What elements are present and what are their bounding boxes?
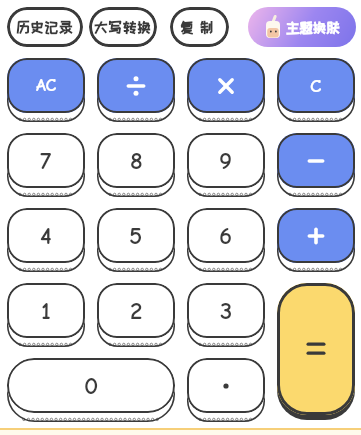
staticText: 6 [219,221,233,250]
button[interactable] [187,358,265,413]
button[interactable]: 历史记录 [7,7,83,47]
staticText: 大写转换 [94,20,152,35]
staticText: 7 [40,146,52,175]
button[interactable] [97,58,175,113]
button[interactable]: 主题换肤 [248,7,356,47]
button[interactable]: C [277,58,355,113]
button[interactable]: 5 [97,208,175,263]
button[interactable]: 9 [187,133,265,188]
staticText: 8 [130,146,143,175]
button[interactable] [187,58,265,113]
button[interactable]: 8 [97,133,175,188]
staticText: 1 [41,296,51,325]
button[interactable]: 1 [7,283,85,338]
button[interactable]: 3 [187,283,265,338]
button[interactable]: 大写转换 [89,7,157,47]
staticText: 复制 [180,20,220,35]
button[interactable] [277,133,355,188]
button[interactable]: 2 [97,283,175,338]
button[interactable]: 0 [7,358,175,413]
button[interactable]: 7 [7,133,85,188]
staticText: 2 [130,296,143,325]
staticText: 历史记录 [16,20,74,35]
staticText: 主题换肤 [286,20,340,35]
button[interactable]: 4 [7,208,85,263]
staticText: 4 [40,221,52,250]
button[interactable]: AC [7,58,85,113]
staticText: 3 [220,296,233,325]
button[interactable]: 6 [187,208,265,263]
staticText: 9 [219,146,233,175]
button[interactable] [277,208,355,263]
button[interactable] [277,283,355,415]
staticText: 5 [129,221,143,250]
staticText: C [310,75,322,97]
button[interactable]: 复制 [170,7,229,47]
staticText: 0 [84,371,99,400]
staticText: AC [36,75,57,96]
